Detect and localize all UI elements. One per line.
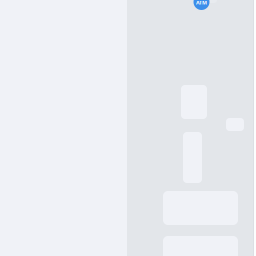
button[interactable]: ATM <box>186 0 216 10</box>
staticText: ATM <box>196 0 207 6</box>
